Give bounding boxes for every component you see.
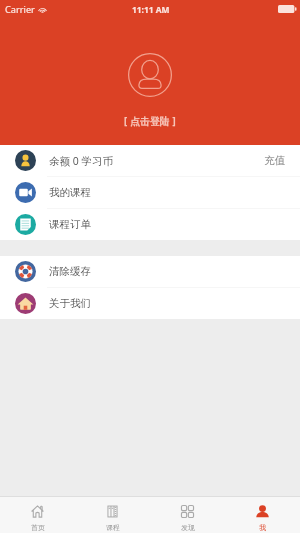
- staticText: 余额 0 学习币: [49, 154, 113, 168]
- staticText: 课程订单: [49, 218, 91, 231]
- staticText: 我的课程: [49, 186, 91, 199]
- staticText: 清除缓存: [49, 265, 91, 278]
- button[interactable]: 首页: [0, 497, 75, 533]
- button[interactable]: 清除缓存: [0, 256, 300, 287]
- button[interactable]: 充值: [262, 150, 287, 171]
- button[interactable]: 发现: [150, 497, 225, 533]
- button[interactable]: [ 点击登陆 ]: [116, 112, 184, 131]
- staticText: 充值: [264, 154, 285, 167]
- staticText: 发现: [181, 523, 195, 532]
- staticText: 首页: [31, 523, 45, 532]
- staticText: 我: [259, 523, 266, 532]
- staticText: Carrier: [5, 3, 35, 16]
- staticText: [ 点击登陆 ]: [124, 115, 176, 128]
- button[interactable]: 余额 0 学习币: [0, 145, 300, 176]
- button[interactable]: 课程订单: [0, 209, 300, 240]
- staticText: 关于我们: [49, 297, 91, 310]
- button[interactable]: 我: [225, 497, 300, 533]
- staticText: 课程: [106, 523, 120, 532]
- button[interactable]: 课程: [75, 497, 150, 533]
- button[interactable]: 我的课程: [0, 177, 300, 208]
- button[interactable]: Avatar: [128, 53, 172, 97]
- staticText: 11:11 AM: [132, 4, 170, 15]
- button[interactable]: 关于我们: [0, 288, 300, 319]
